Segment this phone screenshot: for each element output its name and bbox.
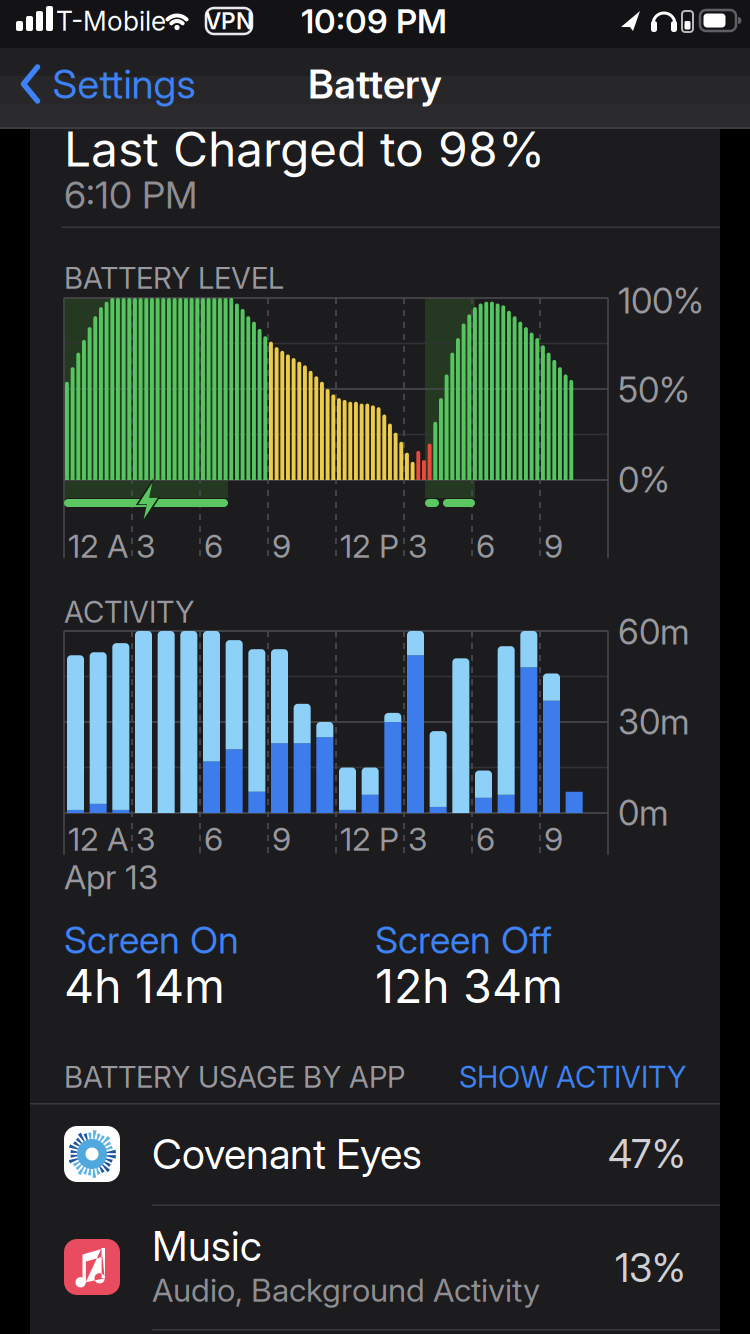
staticText: ACTIVITY (64, 595, 194, 629)
staticText: 4h 14m (64, 958, 225, 1014)
staticText: 12h 34m (375, 958, 563, 1014)
staticText: Covenant Eyes (152, 1130, 422, 1178)
staticText: Screen On (64, 918, 239, 962)
staticText: Music (152, 1222, 262, 1270)
staticText: 6 (476, 527, 495, 565)
staticText: 3 (136, 527, 155, 565)
staticText: Settings (52, 60, 195, 108)
staticText: 10:09 PM (301, 1, 447, 41)
staticText: BATTERY USAGE BY APP (64, 1060, 405, 1094)
staticText: Apr 13 (64, 857, 158, 897)
staticText: 12 P (340, 527, 399, 565)
staticText: 3 (408, 527, 427, 565)
staticText: 0% (618, 460, 670, 500)
button[interactable]: Music (30, 1206, 720, 1330)
button[interactable]: Back to Settings (20, 54, 195, 114)
staticText: 30m (618, 702, 690, 742)
staticText: 9 (544, 527, 563, 565)
staticText: 3 (136, 820, 155, 858)
button[interactable]: SHOW ACTIVITY (0, 0, 750, 1334)
staticText: 12 A (68, 527, 128, 565)
staticText: 6 (204, 527, 223, 565)
staticText: 9 (272, 820, 291, 858)
staticText: 50% (618, 370, 690, 410)
staticText: 6 (204, 820, 223, 858)
staticText: SHOW ACTIVITY (459, 1060, 686, 1094)
staticText: Battery (308, 60, 442, 108)
staticText: 9 (272, 527, 291, 565)
staticText: 12 A (68, 820, 128, 858)
staticText: 3 (408, 820, 427, 858)
staticText: 60m (618, 612, 690, 652)
staticText: VPN (205, 8, 253, 34)
staticText: 12 P (340, 820, 399, 858)
staticText: T-Mobile (56, 5, 166, 37)
staticText: 9 (544, 820, 563, 858)
staticText: Audio, Background Activity (152, 1271, 540, 1309)
staticText: 0m (618, 793, 669, 833)
staticText: BATTERY LEVEL (64, 261, 284, 295)
staticText: 13% (615, 1245, 686, 1291)
button[interactable]: Covenant Eyes (30, 1104, 720, 1204)
staticText: 100% (618, 281, 704, 321)
staticText: 6:10 PM (64, 173, 197, 217)
staticText: Last Charged to 98% (64, 121, 545, 177)
staticText: 47% (608, 1131, 686, 1177)
staticText: 6 (476, 820, 495, 858)
staticText: Screen Off (375, 918, 552, 962)
